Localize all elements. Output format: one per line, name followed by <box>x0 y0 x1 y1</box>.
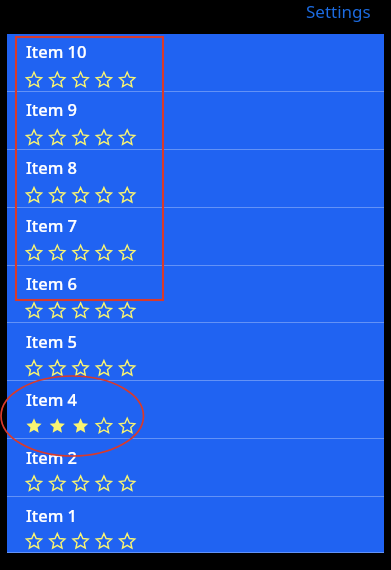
button[interactable]: Item 4 <box>7 382 384 440</box>
staticText: Item 2 <box>26 446 77 468</box>
button[interactable]: Item 6 <box>7 266 384 324</box>
staticText: Item 4 <box>26 388 77 410</box>
button[interactable]: Item 1 <box>7 498 384 556</box>
staticText: Item 8 <box>26 156 77 178</box>
button[interactable]: Item 8 <box>7 150 384 208</box>
staticText: Item 6 <box>26 272 77 294</box>
staticText: Item 9 <box>26 98 77 120</box>
staticText: Item 10 <box>26 40 87 62</box>
button[interactable]: Item 9 <box>7 92 384 150</box>
button[interactable]: Item 2 <box>7 440 384 498</box>
staticText: Settings <box>306 0 371 23</box>
button[interactable]: Item 10 <box>7 34 384 92</box>
button[interactable]: Item 5 <box>7 324 384 382</box>
staticText: Item 1 <box>26 504 77 526</box>
button[interactable]: Settings <box>294 0 391 25</box>
button[interactable]: Item 7 <box>7 208 384 266</box>
staticText: Item 7 <box>26 214 77 236</box>
staticText: Item 5 <box>26 330 77 352</box>
